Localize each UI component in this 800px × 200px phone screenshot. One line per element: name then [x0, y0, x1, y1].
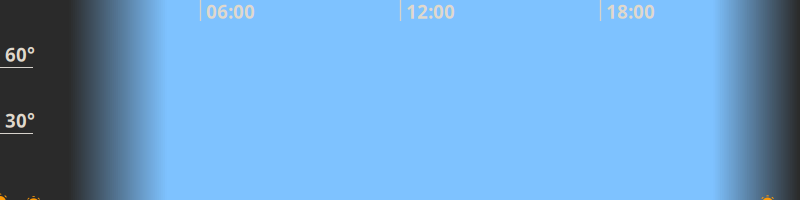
staticText: 18:00: [606, 0, 655, 24]
staticText: 12:00: [406, 0, 455, 24]
staticText: 30°: [5, 108, 35, 133]
staticText: 60°: [5, 42, 35, 67]
staticText: 06:00: [206, 0, 255, 24]
